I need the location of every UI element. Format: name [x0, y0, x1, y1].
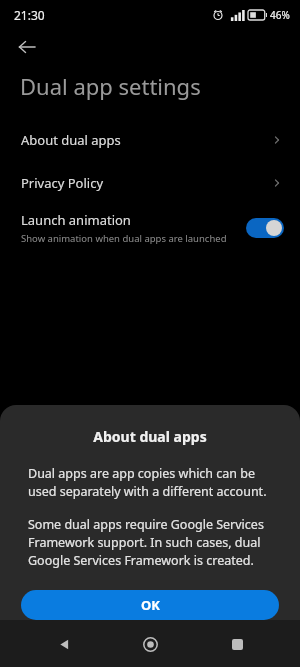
staticText: 21:30	[14, 7, 45, 23]
button[interactable]: Back	[41, 621, 87, 667]
button[interactable]: OK	[21, 590, 279, 620]
staticText: About dual apps	[21, 131, 121, 149]
staticText: Privacy Policy	[21, 174, 104, 192]
button[interactable]: Launch animation	[0, 204, 300, 252]
button[interactable]: About dual apps	[0, 118, 300, 161]
button[interactable]: Back	[12, 32, 42, 62]
staticText: Some dual apps require Google Services F…	[28, 516, 272, 569]
staticText: Show animation when dual apps are launch…	[21, 232, 227, 245]
staticText: 46%	[270, 8, 290, 22]
button[interactable]: Launch animation toggle	[246, 218, 284, 238]
button[interactable]: Recents	[214, 621, 260, 667]
staticText: Launch animation	[21, 211, 131, 229]
staticText: About dual apps	[0, 427, 300, 446]
staticText: Dual apps are app copies which can be us…	[28, 465, 272, 500]
staticText: Dual app settings	[20, 71, 201, 101]
button[interactable]: Privacy Policy	[0, 161, 300, 204]
staticText: OK	[141, 596, 160, 614]
button[interactable]: Home	[127, 621, 173, 667]
